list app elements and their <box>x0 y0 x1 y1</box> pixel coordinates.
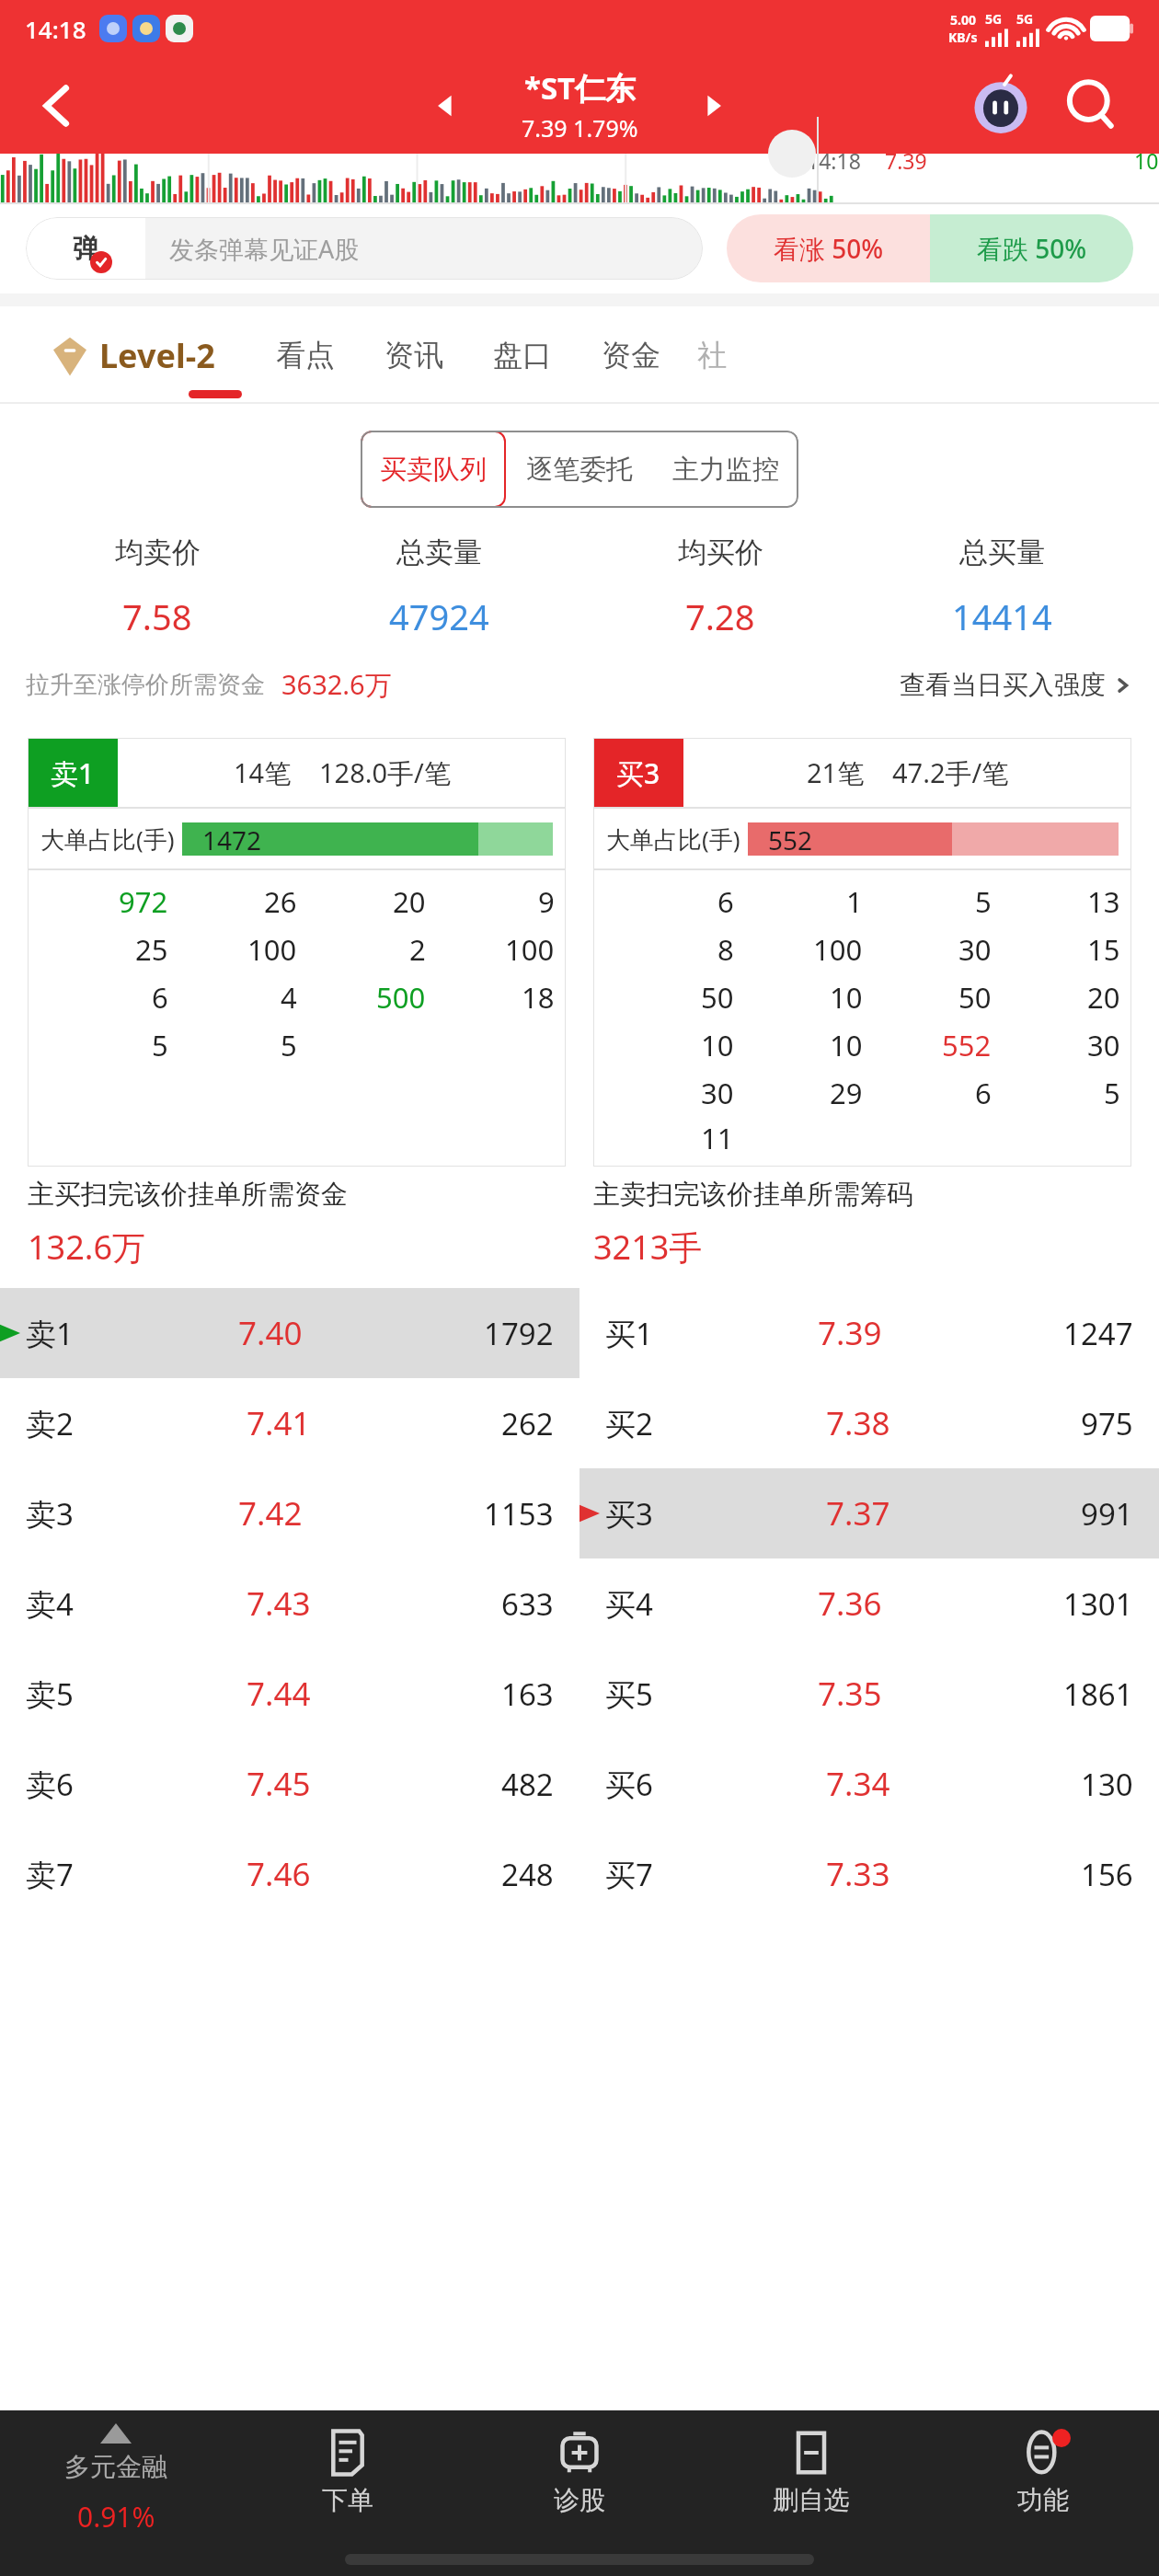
button[interactable]: 买3 <box>579 1468 1159 1558</box>
staticText: 25 <box>135 930 168 969</box>
staticText: 9 <box>538 882 555 921</box>
staticText: 14笔 <box>234 754 292 791</box>
button[interactable]: Previous stock <box>420 80 472 132</box>
staticText: 10 <box>1134 146 1159 175</box>
button[interactable]: 弹 <box>26 217 703 280</box>
staticText: 卖7 <box>26 1854 74 1895</box>
staticText: 11 <box>701 1119 734 1157</box>
staticText: 6 <box>152 978 168 1017</box>
button[interactable]: 卖6 <box>0 1739 579 1829</box>
button[interactable]: Search <box>1060 75 1122 137</box>
button[interactable]: 主力监控 <box>652 431 798 508</box>
button[interactable]: AI assistant <box>970 75 1032 137</box>
staticText: 13 <box>1087 882 1120 921</box>
staticText: 132.6万 <box>28 1225 146 1270</box>
staticText: Level-2 <box>99 333 215 378</box>
staticText: 975 <box>1081 1403 1133 1444</box>
staticText: 资讯 <box>384 337 443 374</box>
staticText: 7.35 <box>818 1672 882 1716</box>
staticText: 7.43 <box>247 1581 311 1626</box>
staticText: 7.38 <box>826 1401 890 1445</box>
staticText: 30 <box>958 930 992 969</box>
staticText: 552 <box>768 822 813 856</box>
staticText: 991 <box>1081 1493 1133 1535</box>
button[interactable]: 看涨 50% <box>727 214 930 282</box>
button[interactable]: 看跌 50% <box>930 214 1133 282</box>
staticText: 1247 <box>1063 1313 1133 1354</box>
button[interactable]: 下单 <box>232 2410 464 2576</box>
button[interactable]: 功能 <box>927 2410 1159 2576</box>
button[interactable]: 买2 <box>579 1378 1159 1468</box>
button[interactable]: 买6 <box>579 1739 1159 1829</box>
button[interactable]: 卖2 <box>0 1378 579 1468</box>
button[interactable]: 社 <box>697 337 727 374</box>
button[interactable]: 逐笔委托 <box>506 431 652 508</box>
staticText: 功能 <box>1017 2484 1069 2516</box>
staticText: 7.44 <box>247 1672 311 1716</box>
staticText: 7.37 <box>826 1491 890 1535</box>
button[interactable]: 买7 <box>579 1829 1159 1919</box>
button[interactable]: Back <box>20 69 94 143</box>
staticText: 26 <box>264 882 297 921</box>
staticText: 0.91% <box>77 2498 155 2536</box>
staticText: 5G <box>985 10 1003 28</box>
staticText: 1792 <box>484 1313 554 1354</box>
button[interactable]: 诊股 <box>464 2410 695 2576</box>
staticText: 拉升至涨停价所需资金 <box>26 670 265 700</box>
staticText: 10 <box>830 1026 863 1064</box>
button[interactable]: 卖7 <box>0 1829 579 1919</box>
button[interactable]: 删自选 <box>695 2410 927 2576</box>
staticText: 20 <box>1087 978 1120 1017</box>
staticText: 248 <box>501 1854 554 1895</box>
button[interactable]: 卖1 <box>0 1288 579 1378</box>
staticText: 633 <box>501 1583 554 1625</box>
button[interactable]: 多元金融 <box>0 2410 232 2576</box>
staticText: 7.39 <box>818 1311 882 1355</box>
staticText: 15 <box>1087 930 1120 969</box>
button[interactable]: Next stock <box>687 80 739 132</box>
staticText: 128.0手/笔 <box>319 754 451 791</box>
staticText: 买3 <box>605 1493 653 1535</box>
staticText: 卖6 <box>26 1764 74 1805</box>
staticText: 买7 <box>605 1854 653 1895</box>
staticText: 5 <box>281 1026 297 1064</box>
staticText: 看点 <box>276 337 335 374</box>
staticText: 482 <box>501 1764 554 1805</box>
staticText: 主力监控 <box>672 453 779 487</box>
staticText: 均卖价 <box>115 535 201 570</box>
button[interactable]: 盘口 <box>480 337 565 374</box>
staticText: 7.40 <box>238 1311 303 1355</box>
button[interactable]: 资讯 <box>372 337 456 374</box>
staticText: 7.42 <box>238 1491 303 1535</box>
staticText: 1 <box>846 882 863 921</box>
staticText: 14:18 <box>807 146 861 175</box>
staticText: 逐笔委托 <box>526 453 633 487</box>
staticText: 163 <box>501 1673 554 1715</box>
button[interactable]: 看点 <box>263 337 348 374</box>
staticText: 查看当日买入强度 <box>900 669 1106 701</box>
staticText: 262 <box>501 1403 554 1444</box>
staticText: 3213手 <box>593 1225 703 1270</box>
button[interactable]: 卖3 <box>0 1468 579 1558</box>
button[interactable]: 买卖队列 <box>361 431 506 508</box>
staticText: 买5 <box>605 1673 653 1715</box>
staticText: 18 <box>522 978 555 1017</box>
staticText: 5 <box>152 1026 168 1064</box>
button[interactable]: 资金 <box>589 337 673 374</box>
button[interactable]: Level-2 <box>52 333 223 378</box>
staticText: 买4 <box>605 1583 653 1625</box>
staticText: 47.2手/笔 <box>892 754 1009 791</box>
button[interactable]: 卖5 <box>0 1649 579 1739</box>
staticText: 看涨 50% <box>774 231 884 266</box>
staticText: 500 <box>376 978 426 1017</box>
button[interactable]: 买5 <box>579 1649 1159 1739</box>
staticText: 卖5 <box>26 1673 74 1715</box>
button[interactable]: 卖4 <box>0 1558 579 1649</box>
button[interactable]: 查看当日买入强度 <box>900 669 1133 701</box>
staticText: 100 <box>247 930 297 969</box>
button[interactable]: 买1 <box>579 1288 1159 1378</box>
button[interactable]: 买4 <box>579 1558 1159 1649</box>
staticText: 30 <box>701 1074 734 1112</box>
staticText: 弹 <box>73 232 99 266</box>
staticText: 7.46 <box>247 1852 311 1896</box>
